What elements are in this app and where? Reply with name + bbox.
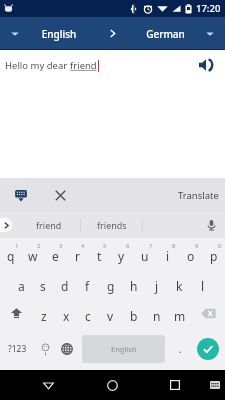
button[interactable]: Listen xyxy=(187,52,225,78)
staticText: c xyxy=(85,308,91,324)
staticText: ?123 xyxy=(8,343,27,355)
button[interactable]: 3 xyxy=(44,238,66,268)
button[interactable]: 2 xyxy=(22,238,44,268)
staticText: j xyxy=(155,278,159,294)
button[interactable]: c xyxy=(77,298,99,328)
button[interactable]: Shift xyxy=(0,298,33,328)
staticText: German xyxy=(130,27,201,41)
staticText: 9 xyxy=(195,242,199,250)
button[interactable]: 1 xyxy=(0,238,22,268)
button[interactable]: s xyxy=(32,268,54,298)
staticText: n xyxy=(153,308,161,324)
staticText: z xyxy=(41,308,47,324)
staticText: g xyxy=(107,278,115,294)
staticText: u xyxy=(141,248,149,264)
button[interactable]: v xyxy=(99,298,122,328)
staticText: w xyxy=(28,248,38,264)
button[interactable]: German xyxy=(124,17,225,50)
staticText: x xyxy=(63,308,70,324)
staticText: y xyxy=(118,248,125,264)
staticText: Translate xyxy=(178,189,219,202)
button[interactable]: friend xyxy=(18,212,80,238)
button[interactable]: Swap languages xyxy=(100,17,124,50)
button[interactable]: Translate xyxy=(168,178,225,212)
button[interactable]: Hide keyboard xyxy=(0,178,42,212)
button[interactable]: Home xyxy=(80,370,145,400)
button[interactable]: Voice input xyxy=(197,212,225,238)
button[interactable]: Back xyxy=(16,370,80,400)
button[interactable]: h xyxy=(122,268,145,298)
staticText: 1 xyxy=(15,242,19,250)
button[interactable]: j xyxy=(145,268,168,298)
staticText: k xyxy=(176,278,183,294)
button[interactable]: x xyxy=(55,298,77,328)
button[interactable]: Enter xyxy=(197,338,219,360)
button[interactable]: Backspace xyxy=(191,298,225,328)
button[interactable]: d xyxy=(54,268,76,298)
button[interactable]: More suggestions xyxy=(0,212,18,238)
button[interactable]: 4 xyxy=(66,238,88,268)
staticText: . xyxy=(179,342,182,356)
staticText: r xyxy=(75,248,80,264)
button[interactable]: ?123 xyxy=(0,328,35,370)
staticText: l xyxy=(201,278,205,294)
button[interactable]: Change language xyxy=(56,328,77,370)
staticText: o xyxy=(187,248,195,264)
button[interactable]: 8 xyxy=(156,238,179,268)
button[interactable]: 7 xyxy=(133,238,156,268)
staticText: q xyxy=(7,248,15,264)
staticText: friend xyxy=(36,219,62,231)
button[interactable]: g xyxy=(99,268,122,298)
staticText: 8 xyxy=(172,242,176,250)
staticText: b xyxy=(130,308,138,324)
button[interactable]: f xyxy=(76,268,99,298)
button[interactable]: 0 xyxy=(202,238,225,268)
button[interactable]: b xyxy=(122,298,145,328)
button[interactable]: a xyxy=(10,268,32,298)
staticText: Hello my dear xyxy=(5,59,70,72)
staticText: 5 xyxy=(103,242,107,250)
button[interactable]: z xyxy=(33,298,55,328)
staticText: 17:20 xyxy=(196,2,221,15)
button[interactable]: 6 xyxy=(110,238,133,268)
staticText: d xyxy=(61,278,69,294)
staticText: 7 xyxy=(149,242,153,250)
button[interactable]: n xyxy=(145,298,168,328)
button[interactable]: Switch keyboard xyxy=(204,370,225,400)
button[interactable]: Close xyxy=(42,178,78,212)
staticText: 3 xyxy=(59,242,63,250)
staticText: 0 xyxy=(218,242,222,250)
staticText: e xyxy=(52,248,59,264)
staticText: 4 xyxy=(81,242,85,250)
button[interactable]: 9 xyxy=(179,238,202,268)
staticText: 2 xyxy=(37,242,41,250)
staticText: a xyxy=(18,278,25,294)
staticText: m xyxy=(174,308,186,324)
staticText: t xyxy=(97,248,102,264)
staticText: friends xyxy=(97,219,127,231)
staticText: f xyxy=(85,278,90,294)
button[interactable]: English xyxy=(82,335,165,363)
button[interactable]: Recent apps xyxy=(145,370,204,400)
staticText: p xyxy=(210,248,218,264)
staticText: i xyxy=(166,248,170,264)
staticText: s xyxy=(40,278,46,294)
button[interactable]: m xyxy=(168,298,191,328)
button[interactable]: k xyxy=(168,268,191,298)
button[interactable]: l xyxy=(191,268,214,298)
staticText: English xyxy=(24,27,94,41)
staticText: 6 xyxy=(126,242,130,250)
staticText: h xyxy=(130,278,138,294)
staticText: v xyxy=(107,308,114,324)
button[interactable]: . xyxy=(170,328,191,370)
button[interactable]: 5 xyxy=(88,238,110,268)
button[interactable]: Emoji xyxy=(35,328,56,370)
button[interactable]: English xyxy=(0,17,100,50)
staticText: English xyxy=(111,344,137,354)
staticText: friend xyxy=(70,59,97,72)
button[interactable]: friends xyxy=(81,212,142,238)
